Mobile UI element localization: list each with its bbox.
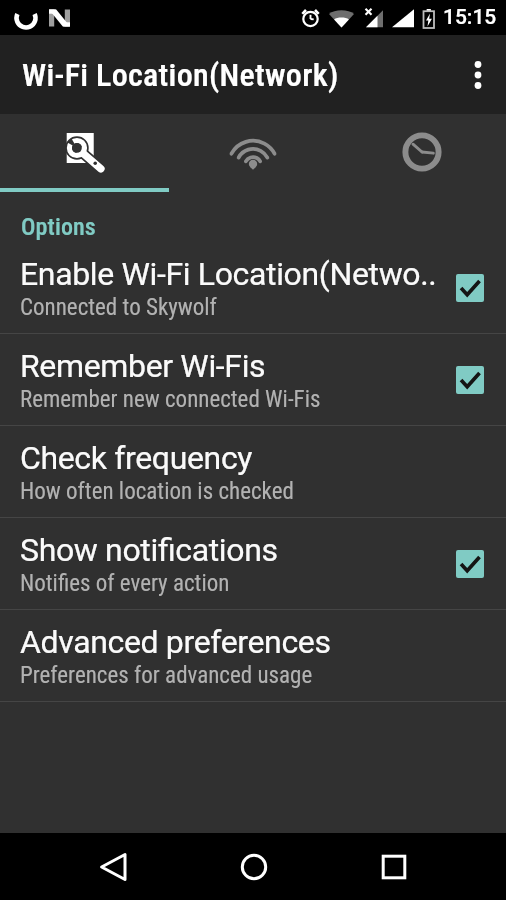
staticText: Remember Wi-Fis xyxy=(20,347,266,385)
button[interactable]: Wi-Fi xyxy=(168,114,337,192)
staticText: Remember new connected Wi-Fis xyxy=(20,386,321,413)
staticText: Enable Wi-Fi Location(Netwo.. xyxy=(20,255,437,293)
staticText: Notifies of every action xyxy=(20,570,230,597)
staticText: Preferences for advanced usage xyxy=(20,662,313,689)
button[interactable]: Back xyxy=(82,833,149,900)
button[interactable]: Show notifications xyxy=(0,518,506,609)
button[interactable]: Toggle Remember Wi-Fis xyxy=(434,334,506,425)
button[interactable]: Toggle Show notifications xyxy=(434,518,506,609)
button[interactable]: Remember Wi-Fis xyxy=(0,334,506,425)
staticText: 15:15 xyxy=(443,5,497,30)
button[interactable]: Enable Wi-Fi Location(Netwo.. xyxy=(0,242,506,333)
staticText: Check frequency xyxy=(20,439,253,477)
staticText: Options xyxy=(21,213,96,241)
button[interactable]: History xyxy=(337,114,506,192)
staticText: Show notifications xyxy=(20,531,278,569)
staticText: Advanced preferences xyxy=(20,623,331,661)
button[interactable]: Advanced preferences xyxy=(0,610,506,701)
staticText: How often location is checked xyxy=(20,478,294,505)
button[interactable]: Check frequency xyxy=(0,426,506,517)
staticText: Connected to Skywolf xyxy=(20,294,217,321)
button[interactable]: Home xyxy=(220,833,287,900)
button[interactable]: Toggle Enable Wi-Fi Location(Netwo.. xyxy=(434,242,506,333)
button[interactable]: Recent apps xyxy=(360,833,427,900)
button[interactable]: Settings xyxy=(0,114,168,192)
button[interactable]: More options xyxy=(450,35,506,114)
staticText: Wi-Fi Location(Network) xyxy=(22,56,339,94)
